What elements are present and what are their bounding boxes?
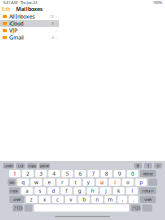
button[interactable]: ,: [117, 196, 127, 203]
staticText: All Inboxes: [9, 13, 35, 20]
button[interactable]: U: [154, 163, 162, 169]
button[interactable]: y: [83, 179, 94, 186]
staticText: 3: [39, 170, 42, 177]
button[interactable]: q: [17, 179, 29, 186]
staticText: e: [48, 179, 51, 186]
button[interactable]: f: [61, 187, 72, 194]
staticText: f: [65, 187, 67, 194]
button[interactable]: z: [26, 196, 37, 203]
button[interactable]: shift: [9, 196, 24, 203]
button[interactable]: e: [43, 179, 55, 186]
button[interactable]: w: [30, 179, 42, 186]
button[interactable]: s: [34, 187, 46, 194]
button[interactable]: [34, 204, 129, 212]
staticText: n: [96, 196, 99, 203]
button[interactable]: tab: [8, 179, 16, 186]
button[interactable]: j: [100, 187, 111, 194]
staticText: caps: [10, 188, 18, 193]
staticText: 100%: [153, 0, 162, 5]
button[interactable]: u: [96, 179, 107, 186]
button[interactable]: copy: [27, 163, 37, 169]
button[interactable]: c: [52, 196, 64, 203]
button[interactable]: 6: [74, 170, 86, 177]
button[interactable]: d: [47, 187, 59, 194]
button[interactable]: b: [78, 196, 90, 203]
staticText: 4: [51, 35, 53, 40]
staticText: .?123: [131, 205, 140, 211]
staticText: x: [43, 196, 46, 203]
button[interactable]: caps: [9, 187, 20, 194]
button[interactable]: 0: [127, 170, 138, 177]
button[interactable]: p: [135, 179, 147, 186]
staticText: y: [87, 179, 90, 186]
button[interactable]: cut: [16, 163, 25, 169]
button[interactable]: k: [113, 187, 124, 194]
staticText: a: [26, 187, 29, 194]
button[interactable]: 1: [9, 170, 20, 177]
button[interactable]: .: [129, 196, 138, 203]
button[interactable]: shift: [140, 196, 156, 203]
button[interactable]: paste: [39, 163, 50, 169]
button[interactable]: 5: [61, 170, 73, 177]
button[interactable]: iCloud: [0, 20, 59, 27]
staticText: j: [105, 187, 106, 194]
staticText: tab: [9, 179, 14, 185]
staticText: t: [74, 179, 76, 186]
staticText: 8: [51, 21, 53, 26]
staticText: 0: [131, 170, 134, 177]
staticText: 4: [52, 170, 55, 177]
button[interactable]: .?123: [131, 204, 141, 212]
staticText: Gmail: [9, 34, 23, 41]
staticText: paste: [40, 163, 49, 168]
staticText: 6: [79, 170, 82, 177]
button[interactable]: r: [57, 179, 68, 186]
button[interactable]: 4: [48, 170, 60, 177]
button[interactable]: 8: [101, 170, 112, 177]
staticText: 1: [13, 170, 16, 177]
staticText: z: [30, 196, 33, 203]
button[interactable]: m: [104, 196, 116, 203]
button[interactable]: g: [74, 187, 85, 194]
button[interactable]: v: [65, 196, 77, 203]
button[interactable]: [24, 204, 32, 212]
button[interactable]: delete: [140, 170, 156, 177]
button[interactable]: 7: [88, 170, 99, 177]
button[interactable]: Edit: [0, 5, 12, 13]
staticText: k: [117, 187, 120, 194]
staticText: shift: [13, 197, 20, 202]
staticText: B: [136, 163, 139, 168]
button[interactable]: Gmail: [0, 34, 59, 41]
button[interactable]: a: [21, 187, 33, 194]
button[interactable]: return: [139, 187, 156, 194]
button[interactable]: n: [91, 196, 103, 203]
button[interactable]: l: [126, 187, 138, 194]
staticText: r: [61, 179, 63, 186]
button[interactable]: o: [122, 179, 134, 186]
staticText: i: [114, 179, 115, 186]
staticText: U: [156, 163, 159, 168]
staticText: u: [100, 179, 103, 186]
staticText: s: [39, 187, 42, 194]
button[interactable]: 2: [22, 170, 34, 177]
staticText: b: [82, 196, 85, 203]
button[interactable]: undo: [3, 163, 14, 169]
button[interactable]: h: [87, 187, 98, 194]
button[interactable]: t: [70, 179, 81, 186]
staticText: d: [52, 187, 55, 194]
button[interactable]: [148, 179, 157, 186]
button[interactable]: 9: [114, 170, 125, 177]
staticText: 9: [118, 170, 121, 177]
staticText: 9:41 AM Thu Jan 23: [3, 0, 37, 5]
button[interactable]: VIP: [0, 27, 59, 34]
button[interactable]: [142, 204, 152, 212]
staticText: 8: [105, 170, 108, 177]
staticText: 7: [92, 170, 95, 177]
button[interactable]: i: [109, 179, 120, 186]
button[interactable]: All Inboxes: [0, 13, 59, 20]
button[interactable]: .?123: [13, 204, 23, 212]
button[interactable]: x: [39, 196, 50, 203]
button[interactable]: 3: [35, 170, 47, 177]
button[interactable]: B: [134, 163, 142, 169]
button[interactable]: I: [144, 163, 152, 169]
